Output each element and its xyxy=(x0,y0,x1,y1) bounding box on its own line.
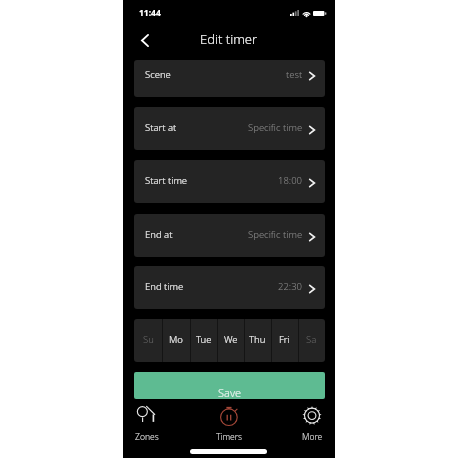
staticText: Su xyxy=(143,333,154,346)
staticText: More xyxy=(302,431,323,443)
staticText: Mo xyxy=(169,333,183,346)
button[interactable]: Back xyxy=(132,27,158,53)
button[interactable]: Thu xyxy=(244,319,271,362)
button[interactable]: More xyxy=(284,401,340,445)
staticText: 22:30 xyxy=(278,280,303,293)
button[interactable]: We xyxy=(217,319,244,362)
staticText: Fri xyxy=(279,333,290,346)
staticText: Start time xyxy=(145,174,188,187)
staticText: Sa xyxy=(306,333,317,346)
button[interactable]: Scene xyxy=(134,60,325,97)
staticText: Edit timer xyxy=(200,30,258,48)
staticText: Tue xyxy=(196,333,212,346)
staticText: End at xyxy=(145,228,173,241)
staticText: End time xyxy=(145,280,184,293)
button[interactable]: End at xyxy=(134,214,325,257)
staticText: Save xyxy=(218,385,242,399)
button[interactable]: Zones xyxy=(119,401,175,445)
button[interactable]: Start at xyxy=(134,107,325,150)
staticText: We xyxy=(224,333,238,346)
button[interactable]: Mo xyxy=(162,319,190,362)
button[interactable]: End time xyxy=(134,266,325,309)
button[interactable]: Fri xyxy=(271,319,298,362)
staticText: test xyxy=(286,68,303,81)
staticText: Zones xyxy=(135,431,159,443)
button[interactable]: Su xyxy=(134,319,162,362)
staticText: Specific time xyxy=(248,121,303,134)
button[interactable]: Timers xyxy=(201,401,257,445)
staticText: Thu xyxy=(249,333,266,346)
staticText: Scene xyxy=(145,68,171,81)
button[interactable]: Start time xyxy=(134,160,325,203)
staticText: Start at xyxy=(145,121,177,134)
button[interactable]: Sa xyxy=(298,319,325,362)
staticText: Timers xyxy=(216,431,243,443)
staticText: 18:00 xyxy=(278,174,303,187)
staticText: 11:44 xyxy=(139,7,161,19)
button[interactable]: Tue xyxy=(190,319,217,362)
staticText: Specific time xyxy=(248,228,303,241)
button[interactable]: Save xyxy=(134,372,325,399)
